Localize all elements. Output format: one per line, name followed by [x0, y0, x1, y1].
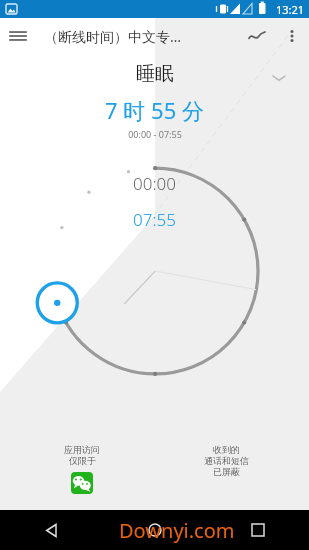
button[interactable]: Chart	[239, 18, 275, 54]
button[interactable]: Home	[103, 510, 206, 550]
staticText: 07:55	[133, 208, 176, 231]
button[interactable]: WeChat	[71, 472, 93, 494]
button[interactable]: More options	[275, 19, 309, 53]
staticText: 13:21	[276, 2, 305, 17]
button[interactable]: Expand	[265, 64, 293, 92]
button[interactable]: Back	[0, 510, 103, 550]
staticText: 睡眠	[136, 62, 174, 86]
button[interactable]: Recents	[206, 510, 309, 550]
staticText: 00:00 - 07:55	[128, 128, 182, 140]
button[interactable]: 应用访问	[10, 444, 154, 494]
button[interactable]: Menu	[0, 18, 36, 54]
staticText: 应用访问	[64, 444, 100, 455]
staticText: 00:00	[133, 172, 176, 195]
staticText: Downyi.com	[119, 517, 235, 544]
staticText: 收到的	[213, 444, 240, 455]
staticText: 7 时 55 分	[105, 95, 204, 125]
staticText: 仅限于	[69, 455, 96, 466]
staticText: （断线时间）中文专…	[44, 27, 239, 46]
staticText: 通话和短信	[204, 455, 249, 466]
button[interactable]: 收到的	[154, 444, 299, 477]
staticText: 已屏蔽	[213, 466, 240, 477]
